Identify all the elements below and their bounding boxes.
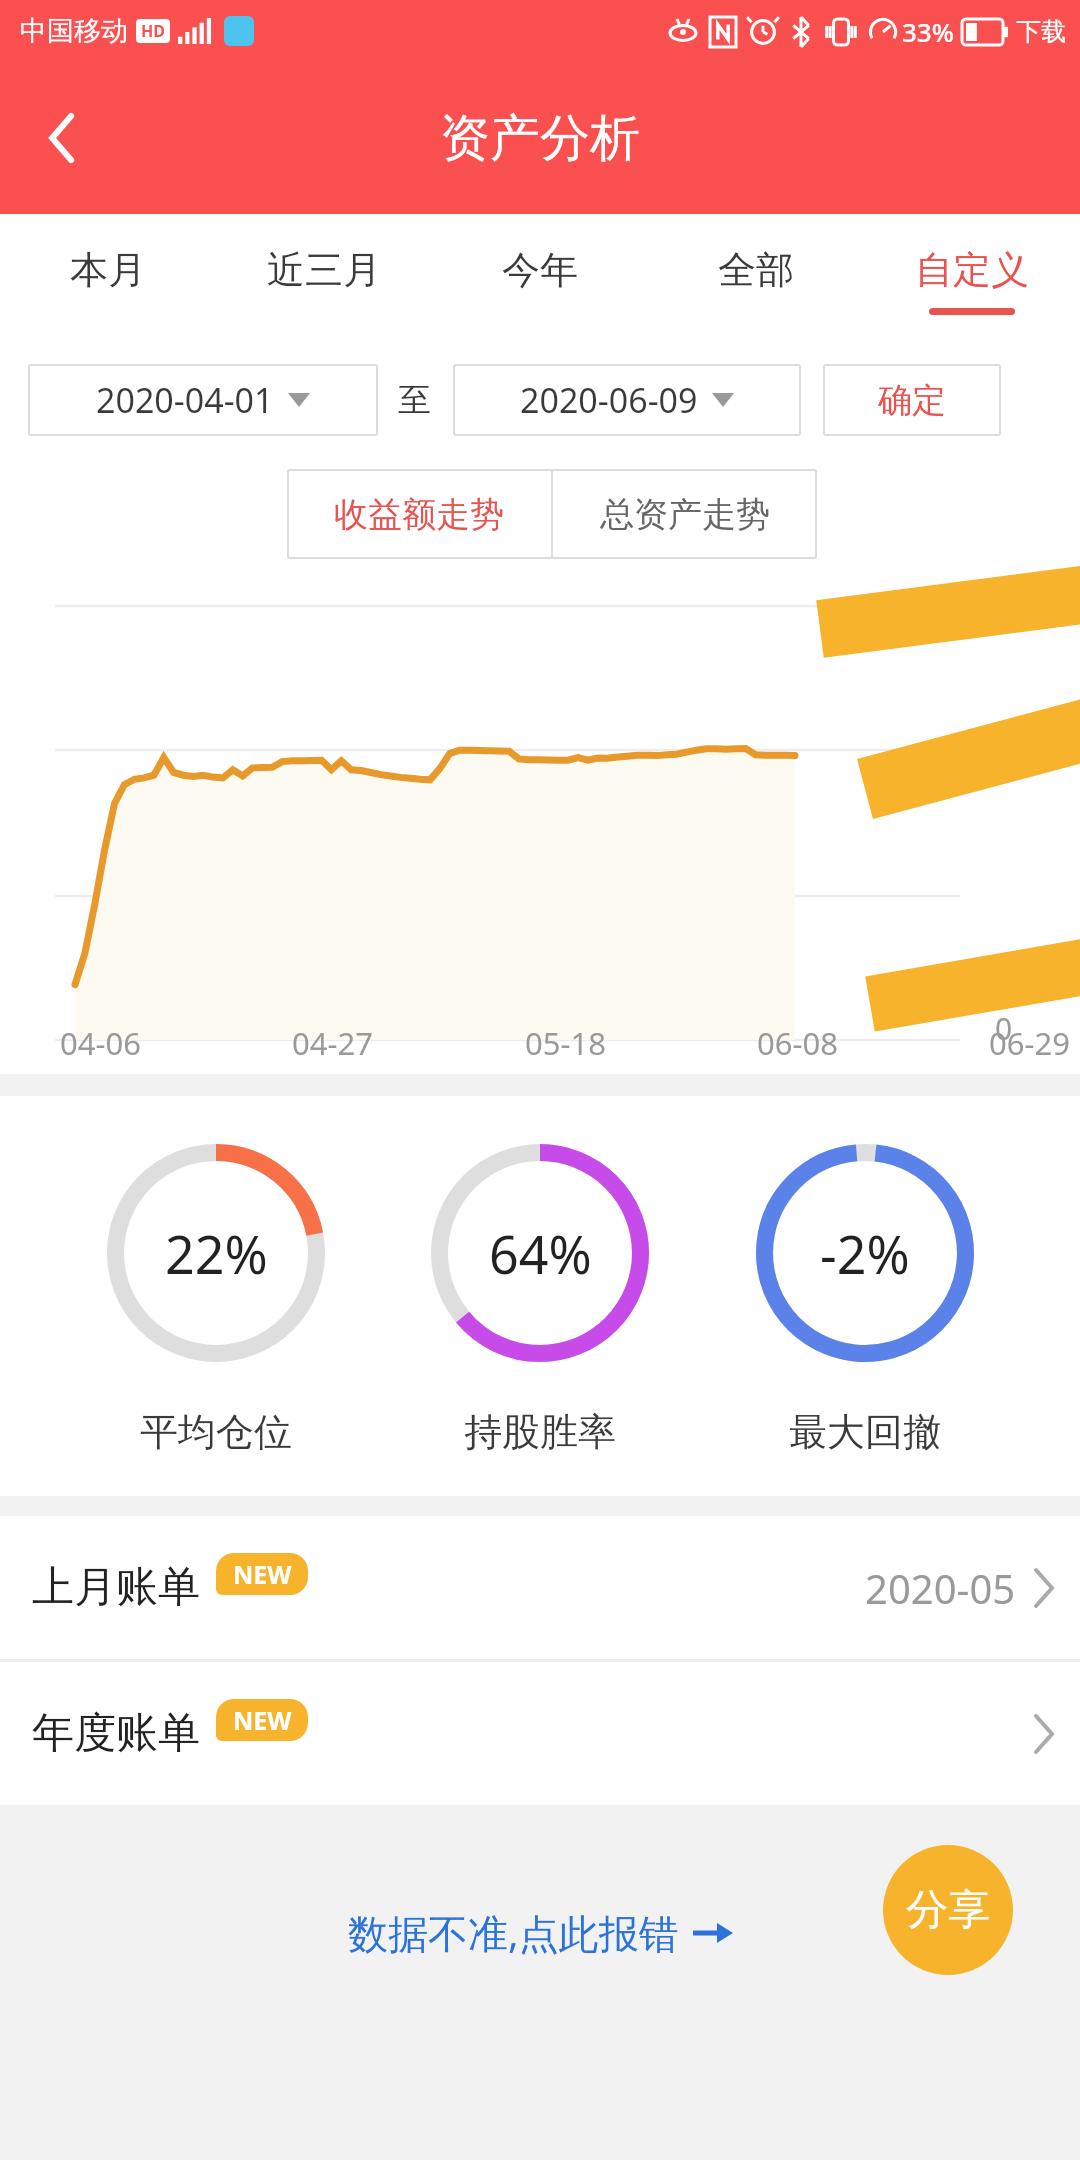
staticText: NEW xyxy=(233,1557,292,1591)
staticText: 0 xyxy=(995,1008,1013,1049)
staticText: 04-06 xyxy=(60,1022,141,1064)
staticText: 上月账单 xyxy=(32,1561,200,1614)
button[interactable]: 自定义 xyxy=(864,214,1080,346)
staticText: 年度账单 xyxy=(32,1707,200,1760)
staticText: 2020-06-09 xyxy=(520,377,698,423)
staticText: 2020-05 xyxy=(865,1561,1016,1615)
button[interactable]: 2020-06-09 xyxy=(453,364,801,436)
staticText: 05-18 xyxy=(525,1022,606,1064)
staticText: 最大回撤 xyxy=(789,1408,941,1456)
staticText: 近三月 xyxy=(267,246,381,294)
button[interactable]: 收益额走势 xyxy=(287,469,551,559)
staticText: HD xyxy=(141,20,165,42)
staticText: 64% xyxy=(489,1218,592,1289)
button[interactable]: 上月账单 xyxy=(0,1516,1080,1659)
staticText: 今年 xyxy=(502,246,578,294)
staticText: 资产分析 xyxy=(440,107,640,170)
staticText: NEW xyxy=(233,1703,292,1737)
staticText: 中国移动 xyxy=(20,14,128,48)
button[interactable]: 近三月 xyxy=(216,214,432,346)
button[interactable]: 分享 xyxy=(883,1845,1013,1975)
button[interactable]: 本月 xyxy=(0,214,216,346)
staticText: 平均仓位 xyxy=(140,1408,292,1456)
staticText: 数据不准,点此报错 xyxy=(348,1905,679,1960)
button[interactable]: 确定 xyxy=(823,364,1001,436)
staticText: 2020-04-01 xyxy=(96,377,274,423)
staticText: 总资产走势 xyxy=(600,493,770,536)
staticText: 确定 xyxy=(878,379,946,422)
staticText: 收益额走势 xyxy=(334,493,504,536)
button[interactable]: 2020-04-01 xyxy=(28,364,378,436)
button[interactable]: 年度账单 xyxy=(0,1662,1080,1805)
staticText: 06-29 xyxy=(989,1022,1070,1064)
button[interactable]: 数据不准,点此报错 xyxy=(332,1897,749,1968)
staticText: 分享 xyxy=(906,1884,990,1937)
button[interactable]: Back xyxy=(22,98,102,178)
staticText: -2% xyxy=(820,1218,910,1289)
staticText: 至 xyxy=(398,379,431,421)
button[interactable]: 总资产走势 xyxy=(553,469,817,559)
staticText: 本月 xyxy=(70,246,146,294)
staticText: 33% xyxy=(902,14,954,49)
staticText: 持股胜率 xyxy=(464,1408,616,1456)
staticText: 下载 xyxy=(1016,16,1066,47)
staticText: 22% xyxy=(165,1218,268,1289)
staticText: 06-08 xyxy=(757,1022,838,1064)
button[interactable]: 今年 xyxy=(432,214,648,346)
staticText: 自定义 xyxy=(915,246,1029,294)
staticText: 04-27 xyxy=(292,1022,373,1064)
staticText: 全部 xyxy=(718,246,794,294)
button[interactable]: 全部 xyxy=(648,214,864,346)
